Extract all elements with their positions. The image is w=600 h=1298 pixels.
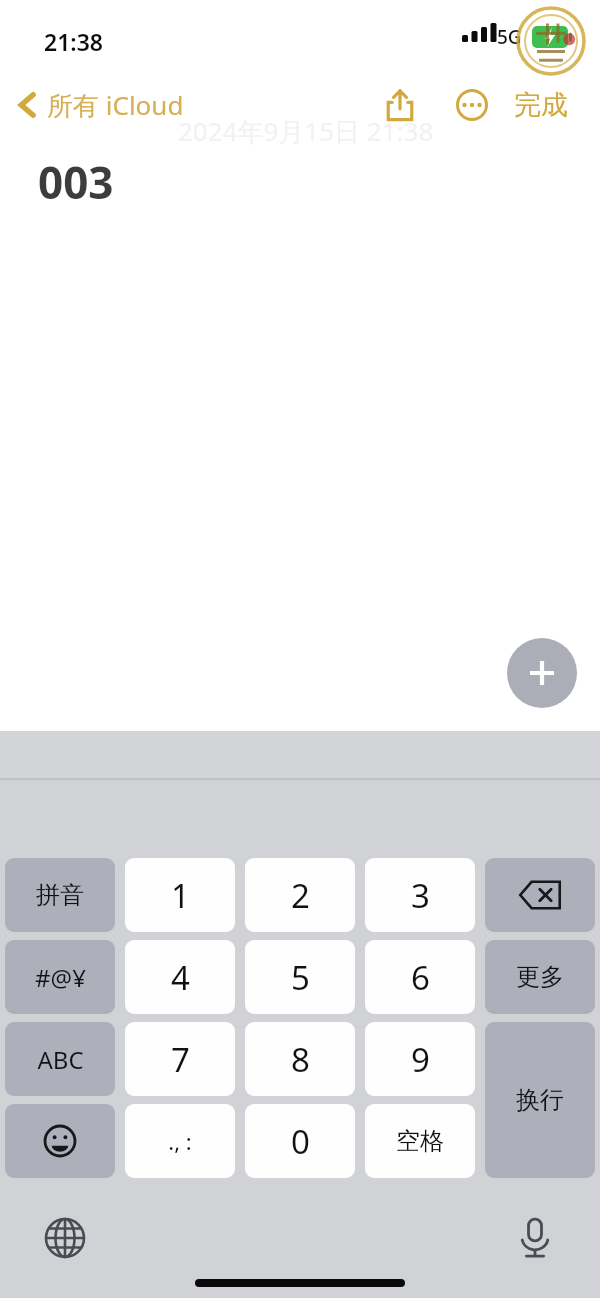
staticText: 5G	[497, 24, 522, 50]
staticText: 2	[291, 873, 310, 918]
staticText: 空格	[396, 1126, 444, 1156]
button[interactable]: Dictation	[502, 1205, 568, 1271]
staticText: 3	[411, 873, 430, 918]
staticText: 更多	[516, 962, 564, 992]
button[interactable]: 8	[245, 1022, 355, 1096]
button[interactable]: 拼音	[5, 858, 115, 932]
button[interactable]: ., :	[125, 1104, 235, 1178]
staticText: ABC	[37, 1043, 84, 1076]
staticText: 9	[411, 1037, 430, 1082]
button[interactable]: 6	[365, 940, 475, 1014]
staticText: 所有 iCloud	[47, 87, 184, 123]
button[interactable]: 4	[125, 940, 235, 1014]
staticText: ., :	[168, 1126, 192, 1156]
staticText: 拼音	[36, 880, 84, 910]
staticText: 7	[171, 1037, 190, 1082]
button[interactable]: Switch keyboard	[32, 1205, 98, 1271]
button[interactable]: 换行	[485, 1022, 595, 1178]
button[interactable]: More options	[444, 78, 500, 132]
staticText: 0	[291, 1119, 310, 1164]
button[interactable]: Share	[372, 78, 428, 132]
button[interactable]: Add	[507, 638, 577, 708]
staticText: 换行	[516, 1085, 564, 1115]
button[interactable]: 更多	[485, 940, 595, 1014]
staticText: 8	[291, 1037, 310, 1082]
staticText: 6	[411, 955, 430, 1000]
button[interactable]: Emoji keyboard	[5, 1104, 115, 1178]
button[interactable]: 完成	[508, 78, 574, 132]
staticText: 完成	[514, 88, 568, 122]
button[interactable]: 7	[125, 1022, 235, 1096]
staticText: 2024年9月15日 21:38	[178, 113, 434, 149]
button[interactable]: 3	[365, 858, 475, 932]
button[interactable]: 9	[365, 1022, 475, 1096]
staticText: #@¥	[35, 961, 86, 994]
button[interactable]: 5	[245, 940, 355, 1014]
button[interactable]: Delete	[485, 858, 595, 932]
staticText: 4	[171, 955, 190, 1000]
staticText: 5	[291, 955, 310, 1000]
button[interactable]: 2	[245, 858, 355, 932]
button[interactable]: ABC	[5, 1022, 115, 1096]
staticText: 003	[38, 152, 114, 212]
staticText: 21:38	[44, 26, 103, 57]
staticText: 1	[171, 873, 190, 918]
button[interactable]: #@¥	[5, 940, 115, 1014]
button[interactable]: 0	[245, 1104, 355, 1178]
button[interactable]: 所有 iCloud	[8, 78, 194, 132]
button[interactable]: 1	[125, 858, 235, 932]
button[interactable]: 空格	[365, 1104, 475, 1178]
